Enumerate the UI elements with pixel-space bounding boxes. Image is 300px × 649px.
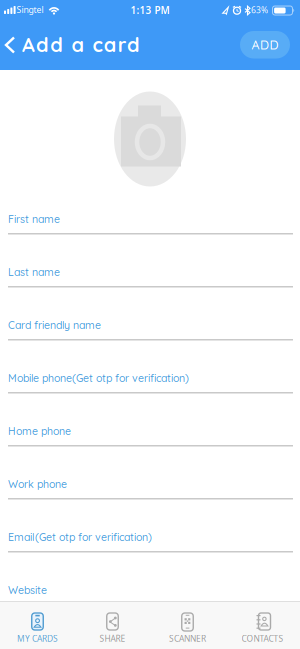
staticText: SCANNER — [169, 633, 206, 644]
button[interactable]: ADD — [240, 31, 290, 58]
staticText: Last name — [8, 265, 60, 279]
staticText: Mobile phone(Get otp for verification) — [8, 371, 189, 385]
button[interactable]: CONTACTS — [225, 602, 300, 649]
staticText: First name — [8, 212, 60, 226]
staticText: SHARE — [99, 633, 125, 644]
button[interactable]: SCANNER — [150, 602, 225, 649]
staticText: Home phone — [8, 424, 71, 438]
staticText: Website — [8, 583, 47, 597]
button[interactable]: MY CARDS — [0, 602, 75, 649]
staticText: Work phone — [8, 477, 67, 491]
staticText: Email(Get otp for verification) — [8, 530, 152, 544]
staticText: MY CARDS — [17, 633, 58, 644]
button[interactable]: SHARE — [75, 602, 150, 649]
staticText: Singtel — [16, 3, 43, 15]
staticText: ADD — [251, 37, 279, 53]
staticText: Add a card — [22, 32, 140, 57]
staticText: Card friendly name — [8, 318, 101, 332]
button[interactable]: Add photo — [114, 91, 186, 186]
staticText: 1:13 PM — [130, 3, 169, 17]
button[interactable]: Back — [4, 36, 15, 54]
staticText: CONTACTS — [241, 633, 283, 644]
staticText: 63% — [251, 4, 268, 16]
